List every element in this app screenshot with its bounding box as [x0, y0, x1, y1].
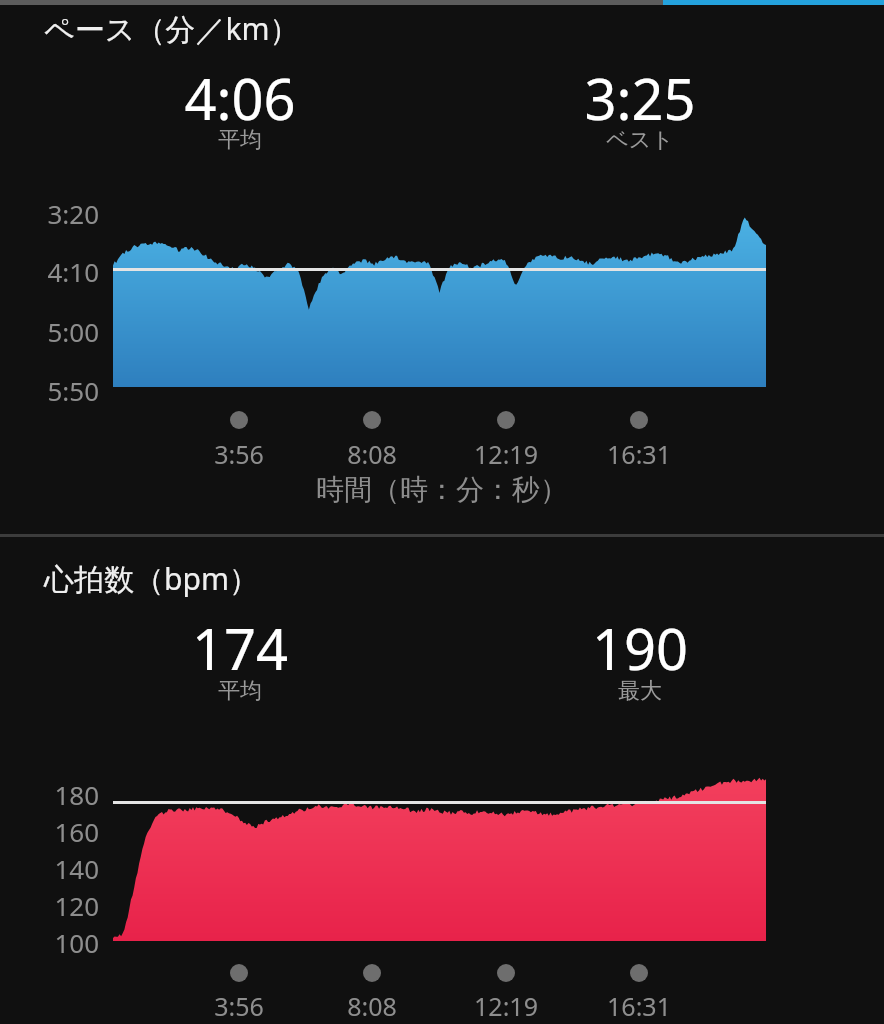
staticText: 16:31	[489, 437, 789, 471]
staticText: 心拍数（bpm）	[44, 558, 259, 599]
staticText: 12:19	[356, 989, 656, 1023]
staticText: 5:00	[0, 314, 99, 349]
staticText: 3:56	[89, 437, 389, 471]
button[interactable]	[0, 534, 884, 1024]
staticText: 174	[90, 610, 390, 686]
staticText: 3:25	[490, 60, 790, 136]
staticText: 最大	[490, 677, 790, 705]
staticText: 3:56	[89, 989, 389, 1023]
staticText: 12:19	[356, 437, 656, 471]
staticText: 16:31	[489, 989, 789, 1023]
staticText: ペース（分／km）	[44, 8, 300, 49]
staticText: 160	[0, 814, 99, 849]
staticText: ベスト	[490, 126, 790, 154]
staticText: 8:08	[222, 437, 522, 471]
staticText: 平均	[90, 677, 390, 705]
staticText: 5:50	[0, 373, 99, 408]
staticText: 180	[0, 777, 99, 812]
staticText: 平均	[90, 126, 390, 154]
staticText: 120	[0, 888, 99, 923]
staticText: 4:10	[0, 254, 99, 289]
staticText: 4:06	[90, 60, 390, 136]
staticText: 100	[0, 925, 99, 960]
staticText: 8:08	[222, 989, 522, 1023]
staticText: 時間（時：分：秒）	[192, 472, 692, 507]
button[interactable]	[0, 0, 884, 534]
staticText: 3:20	[0, 196, 99, 231]
staticText: 140	[0, 851, 99, 886]
staticText: 190	[490, 610, 790, 686]
